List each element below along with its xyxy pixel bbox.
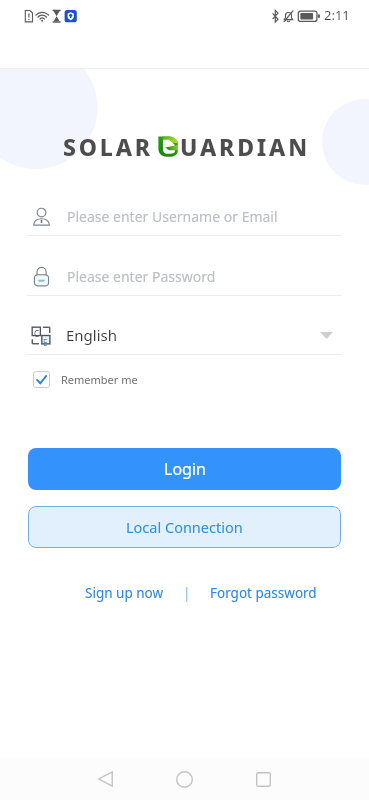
staticText: Remember me xyxy=(61,372,138,387)
staticText: | xyxy=(183,584,191,602)
button[interactable]: Forgot password xyxy=(206,580,321,606)
button[interactable]: Back xyxy=(66,758,145,800)
button[interactable]: Recents xyxy=(224,758,303,800)
button[interactable]: C xyxy=(27,310,342,355)
button[interactable]: Sign up now xyxy=(81,580,168,606)
button[interactable]: Home xyxy=(145,758,224,800)
staticText: Sign up now xyxy=(85,584,164,602)
staticText: Local Connection xyxy=(126,517,243,537)
staticText: English xyxy=(66,325,118,345)
staticText: UARDIAN xyxy=(180,131,310,162)
staticText: Please enter Password xyxy=(67,267,216,286)
staticText: E xyxy=(43,337,48,348)
button[interactable]: Login xyxy=(28,448,341,490)
staticText: Login xyxy=(164,458,206,480)
staticText: Please enter Username or Email xyxy=(67,207,278,226)
staticText: 2:11 xyxy=(324,6,350,24)
button[interactable]: Local Connection xyxy=(28,506,341,548)
button[interactable]: Remember me xyxy=(33,371,138,388)
staticText: Forgot password xyxy=(210,584,317,602)
staticText: SOLAR xyxy=(63,131,153,162)
staticText: C xyxy=(34,328,40,339)
